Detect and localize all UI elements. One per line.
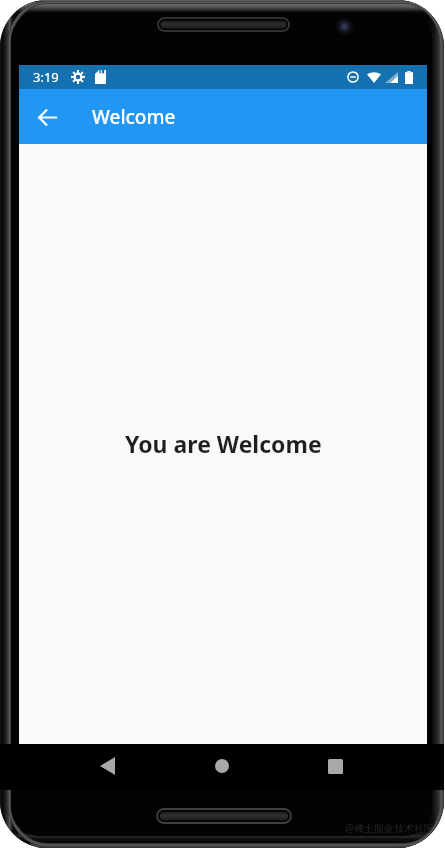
staticText: You are Welcome: [125, 428, 322, 459]
staticText: @稀土掘金技术社区: [345, 821, 434, 835]
button[interactable]: Back: [87, 746, 127, 786]
button[interactable]: Recent apps: [315, 746, 355, 786]
button[interactable]: Home: [202, 746, 242, 786]
staticText: Welcome: [92, 104, 176, 130]
button[interactable]: Navigate up: [28, 98, 66, 136]
staticText: 3:19: [33, 68, 59, 86]
